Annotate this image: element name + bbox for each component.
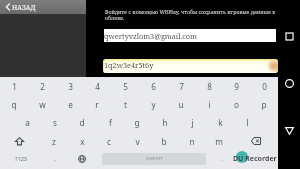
staticText: q	[11, 99, 17, 110]
button[interactable]: c	[95, 132, 123, 150]
staticText: g	[134, 117, 140, 128]
staticText: h	[162, 117, 168, 128]
button[interactable]: Shift	[5, 132, 33, 150]
button[interactable]: j	[178, 113, 206, 131]
button[interactable]: 9	[222, 77, 250, 95]
button[interactable]: Home	[282, 76, 297, 91]
button[interactable]: Recent apps	[282, 29, 297, 44]
staticText: n	[189, 136, 195, 147]
button[interactable]: QWERTY	[102, 153, 206, 165]
staticText: 9	[234, 81, 239, 92]
staticText: .	[221, 155, 223, 163]
staticText: u	[178, 99, 184, 110]
staticText: l	[246, 117, 249, 128]
button[interactable]: l	[233, 113, 261, 131]
button[interactable]: p	[250, 95, 278, 113]
button[interactable]: t	[111, 95, 139, 113]
staticText: o	[234, 99, 239, 110]
staticText: 0	[262, 81, 267, 92]
button[interactable]: 3	[56, 77, 84, 95]
button[interactable]: 5	[111, 77, 139, 95]
button[interactable]: qwertyvzlom3@gmail.com	[104, 29, 276, 42]
staticText: 6	[151, 81, 156, 92]
staticText: i	[208, 99, 211, 110]
staticText: 8	[207, 81, 212, 92]
button[interactable]: 2	[28, 77, 56, 95]
staticText: ?123	[15, 155, 28, 163]
button[interactable]: Change keyboard language	[68, 150, 96, 168]
staticText: НАЗАД	[12, 3, 36, 12]
staticText: m	[215, 136, 223, 147]
staticText: t	[124, 99, 127, 110]
button[interactable]: m	[205, 132, 233, 150]
staticText: b	[161, 136, 167, 147]
button[interactable]: y	[139, 95, 167, 113]
button[interactable]: s	[41, 113, 69, 131]
button[interactable]: 1	[0, 77, 28, 95]
button[interactable]: h	[151, 113, 179, 131]
staticText: x	[80, 136, 85, 147]
staticText: y	[151, 99, 156, 110]
staticText: 1	[12, 81, 17, 92]
staticText: v	[135, 136, 140, 147]
button[interactable]: 1q2w3e4r5t6y	[103, 59, 278, 73]
staticText: ,	[54, 155, 56, 163]
button[interactable]: z	[40, 132, 68, 150]
staticText: DU Recorder	[233, 154, 277, 164]
staticText: f	[109, 117, 112, 128]
button[interactable]: d	[68, 113, 96, 131]
staticText: 2	[40, 81, 45, 92]
staticText: k	[218, 117, 223, 128]
staticText: 5	[123, 81, 128, 92]
button[interactable]: r	[83, 95, 111, 113]
button[interactable]: x	[68, 132, 96, 150]
button[interactable]: k	[206, 113, 234, 131]
button[interactable]: q	[0, 95, 28, 113]
button[interactable]: 0	[250, 77, 278, 95]
staticText: j	[191, 117, 194, 128]
button[interactable]: w	[28, 95, 56, 113]
button[interactable]: o	[222, 95, 250, 113]
staticText: 4	[95, 81, 100, 92]
button[interactable]: 7	[167, 77, 195, 95]
staticText: e	[68, 99, 73, 110]
button[interactable]: Backspace	[242, 132, 270, 150]
button[interactable]: a	[13, 113, 41, 131]
staticText: d	[79, 117, 85, 128]
staticText: QWERTY	[146, 156, 163, 162]
staticText: a	[25, 117, 30, 128]
button[interactable]: 6	[139, 77, 167, 95]
button[interactable]: ?123	[7, 150, 35, 168]
staticText: 7	[179, 81, 184, 92]
staticText: 1q2w3e4r5t6y	[104, 60, 154, 70]
button[interactable]: 8	[195, 77, 223, 95]
staticText: qwertyvzlom3@gmail.com	[104, 31, 197, 41]
button[interactable]: e	[56, 95, 84, 113]
staticText: Войдите с помощью WBPlay, чтобы сохранит…	[105, 8, 283, 22]
staticText: z	[52, 136, 56, 147]
button[interactable]: Back	[282, 123, 297, 138]
button[interactable]: i	[195, 95, 223, 113]
staticText: 3	[68, 81, 73, 92]
button[interactable]: .	[208, 150, 236, 168]
button[interactable]: u	[167, 95, 195, 113]
button[interactable]: b	[150, 132, 178, 150]
button[interactable]: n	[178, 132, 206, 150]
staticText: w	[39, 99, 46, 110]
staticText: p	[261, 99, 267, 110]
button[interactable]: f	[96, 113, 124, 131]
staticText: r	[95, 99, 99, 110]
button[interactable]: НАЗАД	[0, 0, 86, 14]
button[interactable]: g	[123, 113, 151, 131]
button[interactable]: v	[123, 132, 151, 150]
button[interactable]: 4	[83, 77, 111, 95]
staticText: s	[53, 117, 57, 128]
staticText: c	[107, 136, 111, 147]
